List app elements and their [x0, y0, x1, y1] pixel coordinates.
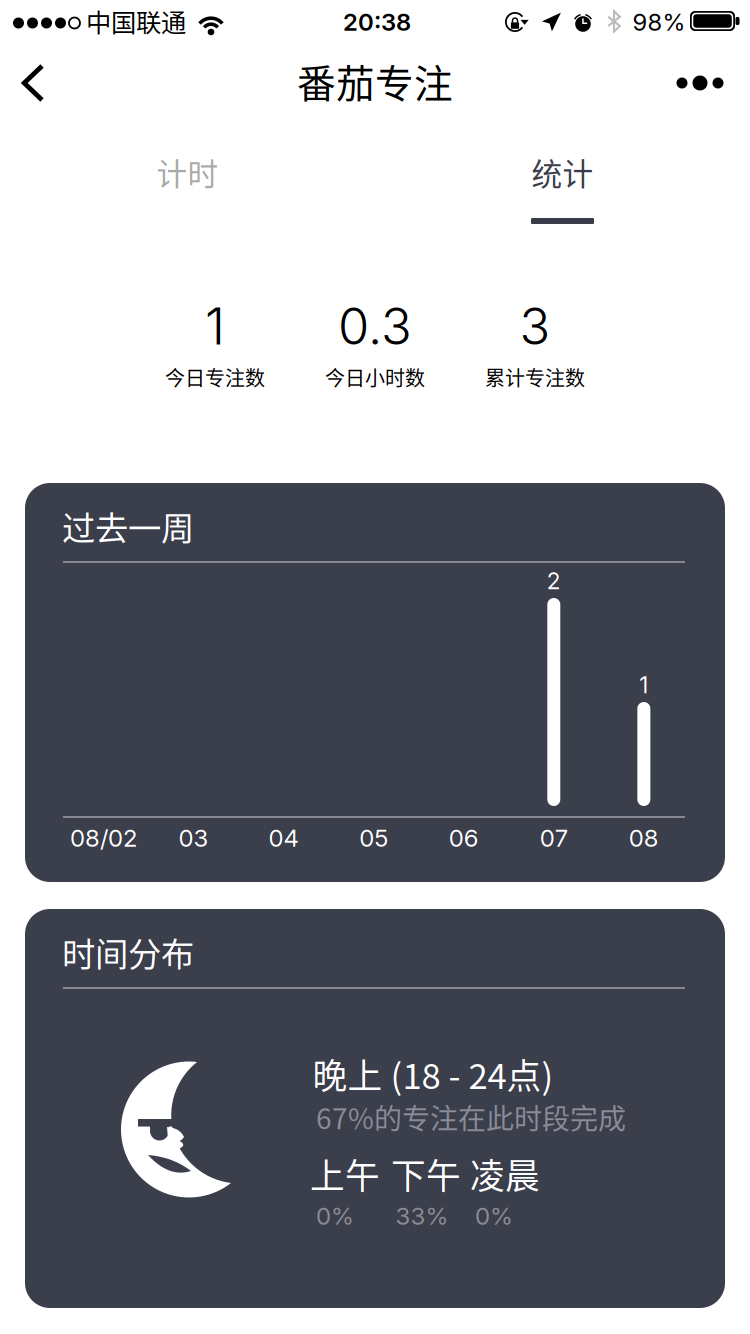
staticText: 08	[629, 823, 659, 852]
staticText: 计时	[156, 150, 218, 194]
staticText: 03	[179, 823, 209, 852]
staticText: 1	[205, 295, 225, 357]
staticText: 1	[639, 671, 648, 699]
staticText: 今日小时数	[325, 362, 425, 391]
staticText: 98%	[632, 7, 685, 36]
button[interactable]: More	[664, 50, 736, 116]
staticText: 过去一周	[62, 502, 194, 550]
staticText: 67%的专注在此时段完成	[316, 1097, 626, 1137]
staticText: 3	[519, 295, 550, 357]
staticText: 今日专注数	[165, 362, 265, 391]
staticText: 08/02	[70, 823, 137, 852]
staticText: 0.3	[338, 295, 412, 357]
staticText: 0%	[316, 1201, 354, 1230]
staticText: 中国联通	[86, 3, 186, 39]
staticText: 上午	[310, 1149, 380, 1199]
staticText: 20:38	[343, 7, 411, 36]
staticText: 累计专注数	[485, 362, 585, 391]
button[interactable]: 计时	[0, 116, 375, 226]
staticText: 06	[449, 823, 479, 852]
staticText: 下午	[391, 1149, 461, 1199]
staticText: 2	[547, 567, 561, 595]
staticText: 晚上 (18 - 24点)	[312, 1049, 553, 1099]
staticText: 番茄专注	[297, 53, 453, 109]
staticText: 时间分布	[62, 928, 194, 976]
button[interactable]: Back	[0, 50, 66, 116]
staticText: 0%	[475, 1201, 513, 1230]
staticText: 统计	[531, 150, 593, 194]
staticText: 05	[359, 823, 388, 852]
staticText: 04	[269, 823, 299, 852]
staticText: 凌晨	[470, 1149, 540, 1199]
button[interactable]: 统计	[375, 116, 750, 226]
staticText: 07	[540, 823, 568, 852]
staticText: 33%	[395, 1201, 448, 1230]
